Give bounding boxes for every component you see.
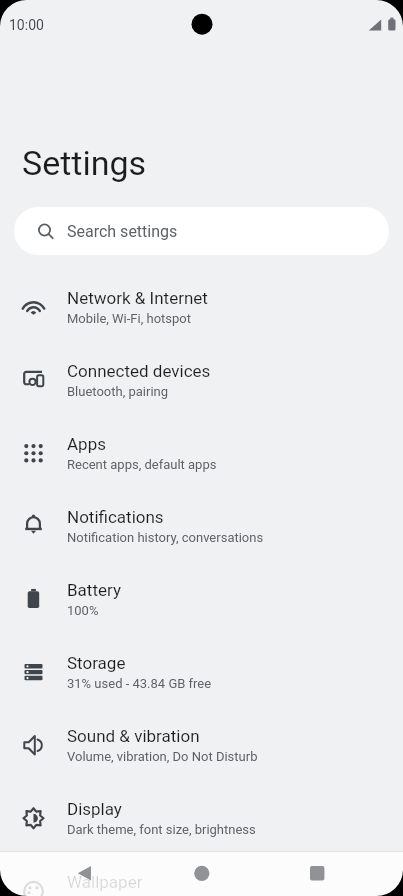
button[interactable]: Wallpaper xyxy=(0,857,403,896)
staticText: 10:00 xyxy=(9,17,44,33)
staticText: Notification history, conversations xyxy=(67,530,264,545)
staticText: Wallpaper xyxy=(67,872,143,892)
button[interactable]: Storage xyxy=(0,638,403,711)
button[interactable] xyxy=(0,851,135,896)
staticText: Battery xyxy=(67,580,121,600)
button[interactable]: Notifications xyxy=(0,492,403,565)
staticText: Recent apps, default apps xyxy=(67,457,217,472)
button[interactable] xyxy=(135,851,269,896)
staticText: 100% xyxy=(67,603,99,618)
staticText: Connected devices xyxy=(67,361,211,381)
staticText: Apps xyxy=(67,434,106,454)
button[interactable]: Display xyxy=(0,784,403,857)
staticText: Volume, vibration, Do Not Disturb xyxy=(67,749,258,764)
staticText: Search settings xyxy=(67,222,178,241)
staticText: Settings xyxy=(22,143,147,183)
staticText: Storage xyxy=(67,653,126,673)
button[interactable]: Sound & vibration xyxy=(0,711,403,784)
staticText: Bluetooth, pairing xyxy=(67,384,169,399)
button[interactable]: Apps xyxy=(0,419,403,492)
staticText: Notifications xyxy=(67,507,164,527)
staticText: Display xyxy=(67,799,122,819)
button[interactable]: Battery xyxy=(0,565,403,638)
staticText: Dark theme, font size, brightness xyxy=(67,822,256,837)
staticText: Mobile, Wi-Fi, hotspot xyxy=(67,311,191,326)
button[interactable]: Network & Internet xyxy=(0,273,403,346)
button[interactable]: Connected devices xyxy=(0,346,403,419)
button[interactable]: Search settings xyxy=(14,207,389,255)
staticText: Network & Internet xyxy=(67,288,208,308)
button[interactable] xyxy=(269,851,403,896)
staticText: Sound & vibration xyxy=(67,726,200,746)
staticText: 31% used - 43.84 GB free xyxy=(67,676,212,691)
